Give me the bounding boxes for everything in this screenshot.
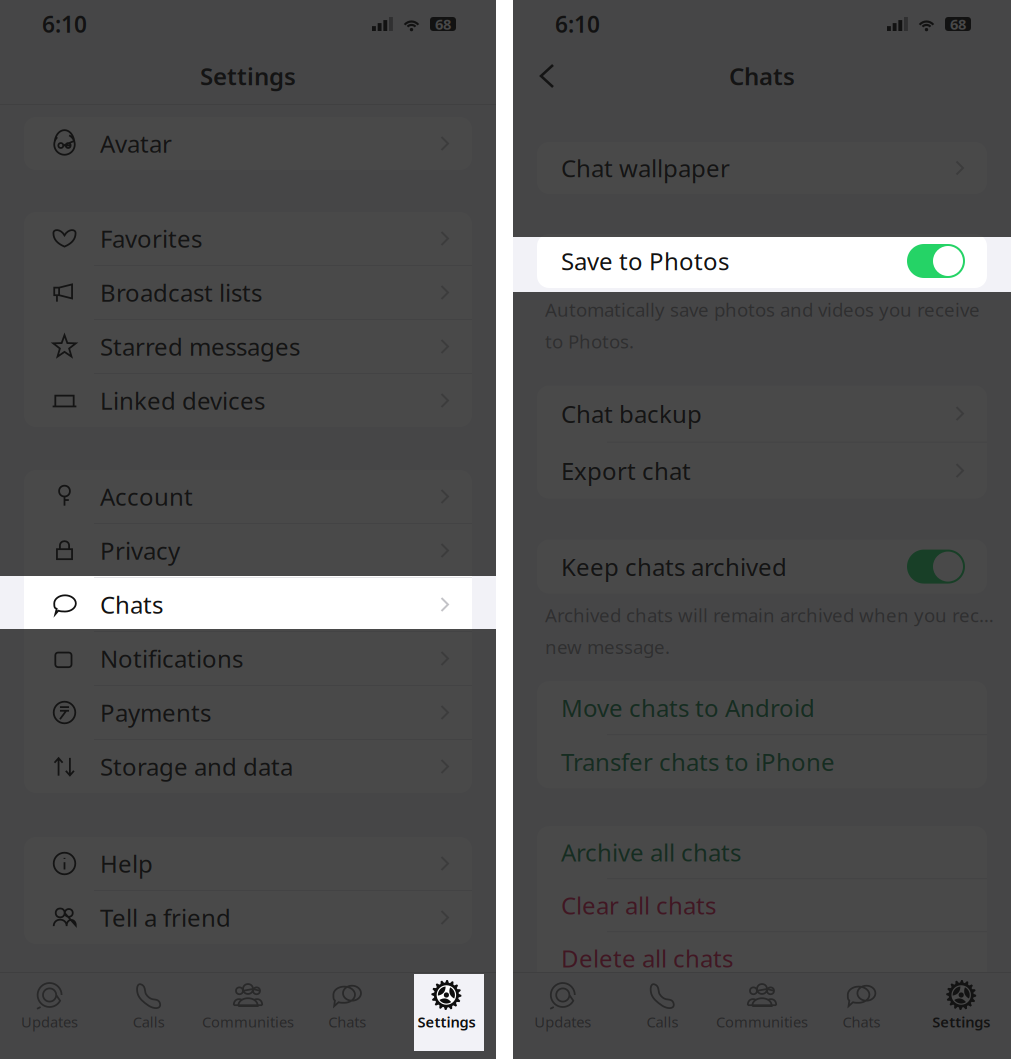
staticText: Calls [133,1012,165,1031]
staticText: new message. [545,634,670,659]
button[interactable]: Storage and data [24,740,472,793]
button[interactable]: Delete all chats [537,932,987,984]
staticText: Calls [646,1012,678,1031]
button[interactable]: Favorites [24,212,472,265]
button[interactable]: Privacy [24,524,472,577]
staticText: 68 [435,14,451,34]
button[interactable]: Back [513,48,555,104]
button[interactable]: Account [24,470,472,523]
button[interactable]: Broadcast lists [24,266,472,319]
staticText: Export chat [561,455,691,486]
staticText: Starred messages [100,331,300,362]
staticText: Updates [21,1012,78,1031]
staticText: Linked devices [100,385,265,416]
staticText: Transfer chats to iPhone [561,746,835,778]
staticText: Chat wallpaper [561,152,730,184]
staticText: Chats [729,60,795,92]
button[interactable]: Chat wallpaper [537,142,987,194]
staticText: Account [100,481,193,512]
staticText: Communities [202,1012,294,1031]
staticText: Move chats to Android [561,692,815,724]
button[interactable]: Starred messages [24,320,472,373]
staticText: Settings [200,60,296,92]
button[interactable]: Help [24,837,472,890]
button[interactable]: Chats [24,578,472,631]
button[interactable]: Move chats to Android [537,681,987,734]
button[interactable]: Settings [911,973,1011,1033]
button[interactable]: Archive all chats [537,826,987,878]
staticText: Automatically save photos and videos you… [545,297,980,322]
staticText: Chats [328,1012,366,1031]
staticText: 6:10 [555,9,600,39]
button[interactable]: Transfer chats to iPhone [537,735,987,788]
button[interactable]: Updates [513,973,613,1033]
staticText: Storage and data [100,751,293,782]
button[interactable]: Calls [613,973,712,1033]
button[interactable]: Updates [0,973,99,1033]
staticText: Save to Photos [561,245,729,277]
button[interactable]: Tell a friend [24,891,472,944]
staticText: Avatar [100,128,172,159]
button[interactable]: Clear all chats [537,879,987,931]
button[interactable]: Keep chats archived [537,540,987,594]
staticText: Keep chats archived [561,551,787,582]
button[interactable]: Settings [397,973,496,1033]
staticText: Favorites [100,223,202,254]
staticText: Privacy [100,535,180,566]
staticText: Archived chats will remain archived when… [545,603,995,627]
staticText: 68 [950,14,966,34]
button[interactable]: Notifications [24,632,472,685]
button[interactable]: Chats [298,973,397,1033]
staticText: Settings [417,1012,475,1031]
button[interactable]: Export chat [537,443,987,499]
staticText: to Photos. [545,329,634,354]
button[interactable]: Calls [99,973,198,1033]
staticText: Updates [534,1012,591,1031]
button[interactable]: Chat backup [537,386,987,442]
button[interactable]: Linked devices [24,374,472,427]
staticText: Delete all chats [561,942,733,974]
button[interactable]: Avatar [24,117,472,170]
button[interactable]: Communities [198,973,298,1033]
staticText: Chats [843,1012,881,1031]
staticText: Chats [100,589,163,620]
staticText: Broadcast lists [100,277,262,308]
staticText: Clear all chats [561,889,716,921]
staticText: Notifications [100,643,243,674]
staticText: Help [100,848,153,879]
button[interactable]: Chats [812,973,911,1033]
staticText: Tell a friend [100,902,231,933]
button[interactable]: Communities [712,973,812,1033]
staticText: Payments [100,697,211,728]
staticText: 6:10 [42,9,87,39]
button[interactable]: Payments [24,686,472,739]
staticText: Chat backup [561,398,702,429]
staticText: Communities [716,1012,808,1031]
staticText: Settings [932,1012,990,1031]
staticText: Archive all chats [561,836,741,868]
button[interactable]: Save to Photos [537,234,987,288]
